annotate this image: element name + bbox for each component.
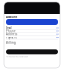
button[interactable]: Save bbox=[6, 49, 58, 54]
staticText: Account bbox=[6, 15, 17, 19]
staticText: Phone bbox=[6, 29, 16, 33]
staticText: Email bbox=[6, 26, 12, 30]
button[interactable]: Payment bbox=[6, 36, 58, 39]
button[interactable]: Phone bbox=[6, 30, 58, 33]
button[interactable]: Email bbox=[6, 26, 58, 30]
staticText: Address bbox=[6, 32, 17, 36]
button[interactable]: Continue bbox=[6, 19, 58, 25]
staticText: Billing bbox=[6, 41, 16, 44]
button[interactable]: Address bbox=[6, 33, 58, 36]
staticText: Terms and privacy policy apply bbox=[6, 56, 28, 58]
staticText: Edit bbox=[56, 33, 58, 35]
staticText: Payment bbox=[6, 36, 17, 39]
staticText: Edit bbox=[56, 37, 58, 38]
